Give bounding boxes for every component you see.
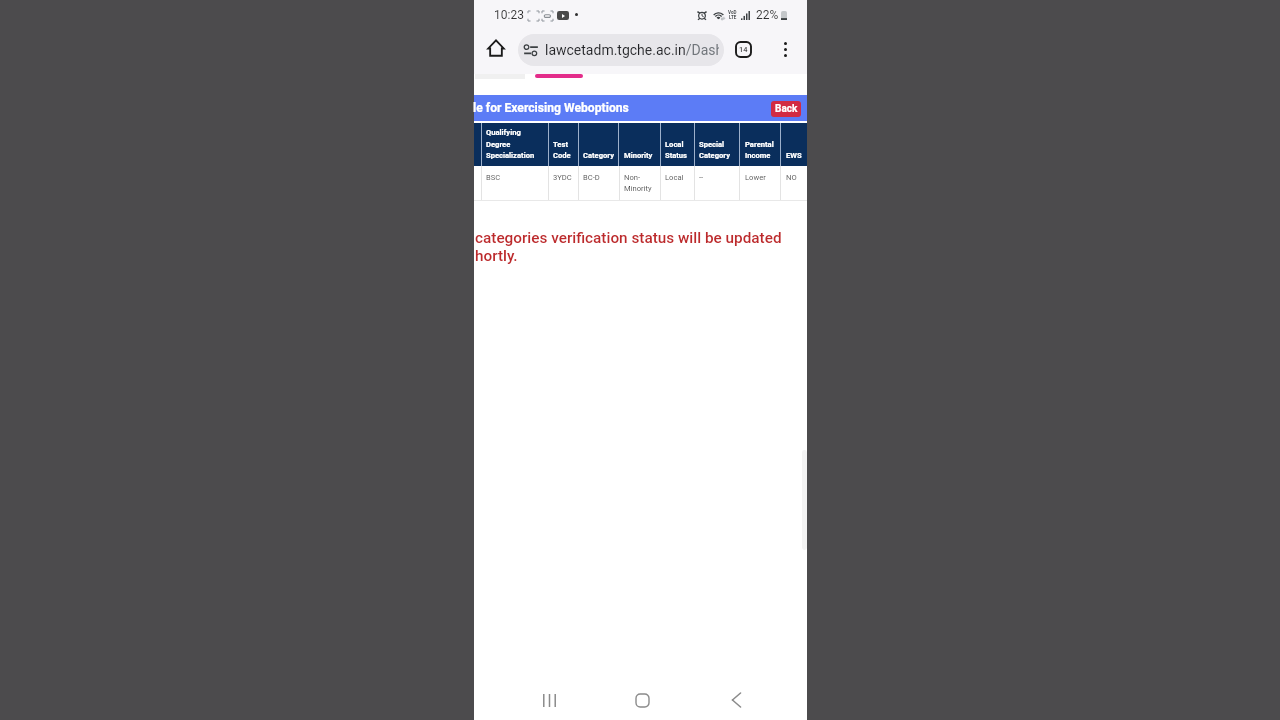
staticText: categories verification status will be u… [475,229,782,247]
staticText: Parental [745,140,774,149]
button[interactable]: Home [485,37,506,58]
staticText: Specialization [486,151,535,160]
staticText: VoD [728,10,737,15]
staticText: Minority [624,151,653,160]
staticText: Lower [745,173,766,182]
staticText: le for Exercising Weboptions [473,101,629,115]
staticText: Income [745,151,771,160]
staticText: 3YDC [553,173,572,182]
staticText: 22% [756,8,779,22]
staticText: Back [775,103,798,115]
staticText: LTE [729,15,737,20]
staticText: -- [699,173,704,182]
staticText: Local [665,140,684,149]
staticText: Code [553,151,571,160]
button[interactable]: Tabs [730,36,756,62]
staticText: Minority [624,184,652,193]
staticText: Category [583,151,615,160]
staticText: NO [786,173,797,182]
staticText: Special [699,140,725,149]
staticText: Qualifying [486,128,521,137]
staticText: Status [665,151,688,160]
button[interactable]: lawcetadm.tgche.ac.in/Dash [518,34,724,66]
staticText: Degree [486,140,511,149]
staticText: Test [553,140,568,149]
staticText: 10:23 [494,8,524,22]
staticText: EWS [786,151,802,160]
button[interactable]: Home [622,680,662,720]
staticText: Local [665,173,684,182]
staticText: Non- [624,173,641,182]
button[interactable]: Back [771,101,801,117]
button[interactable]: Back [716,680,756,720]
staticText: lawcetadm.tgche.ac.in/Dash [545,42,719,58]
button[interactable]: Recent apps [529,680,569,720]
staticText: 14 [739,45,748,54]
staticText: Category [699,151,731,160]
staticText: BC-D [583,173,600,182]
staticText: BSC [486,173,501,182]
staticText: hortly. [475,247,518,265]
button[interactable]: More options [772,36,798,62]
